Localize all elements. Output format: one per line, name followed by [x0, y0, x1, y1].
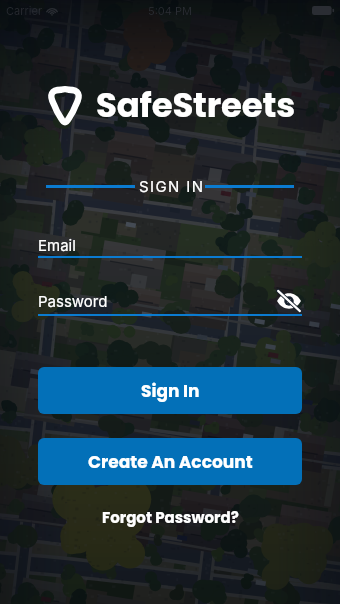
staticText: SafeStreets: [96, 81, 295, 129]
staticText: Email: [38, 236, 76, 254]
staticText: Password: [38, 292, 276, 310]
staticText: Carrier: [6, 4, 43, 17]
staticText: 5:04 PM: [148, 4, 192, 17]
staticText: Sign In: [141, 379, 200, 403]
staticText: SIGN IN: [139, 177, 205, 195]
button[interactable]: Create An Account: [38, 438, 302, 485]
staticText: Forgot Password?: [102, 507, 239, 528]
button[interactable]: Sign In: [38, 367, 302, 414]
button[interactable]: Show password: [276, 288, 302, 314]
button[interactable]: Forgot Password?: [92, 502, 249, 533]
staticText: Create An Account: [88, 450, 253, 474]
